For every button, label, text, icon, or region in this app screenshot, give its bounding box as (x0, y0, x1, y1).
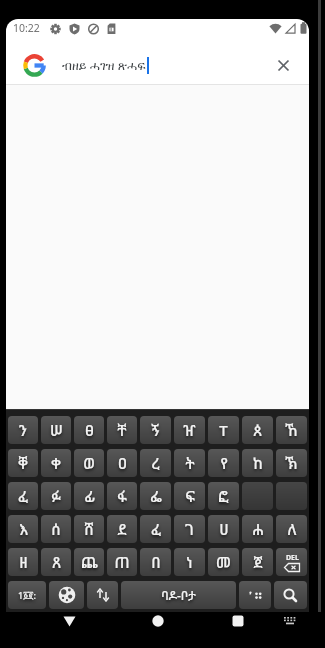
button[interactable]: ባዶ-ቦታ (121, 581, 236, 609)
button[interactable]: እ (8, 515, 38, 543)
button[interactable]: ዠ (174, 416, 205, 444)
staticText: ዐ (118, 453, 127, 473)
button[interactable]: ለ (276, 515, 307, 543)
staticText: ን (19, 420, 27, 440)
button[interactable]: DEL (276, 548, 307, 576)
button[interactable]: ፉ (41, 482, 71, 510)
staticText: ለ (287, 519, 297, 539)
button[interactable] (242, 482, 273, 510)
staticText: ፀ (85, 420, 94, 440)
button[interactable]: T (208, 416, 239, 444)
button[interactable]: ፎ (208, 482, 239, 510)
staticText: ጰ (253, 420, 262, 440)
staticText: ከ (253, 453, 263, 473)
button[interactable]: በ (140, 548, 171, 576)
staticText: እ (19, 519, 28, 539)
button[interactable]: ጰ (242, 416, 273, 444)
button[interactable] (49, 581, 84, 609)
button[interactable]: ፋ (107, 482, 137, 510)
staticText: ነ (186, 552, 193, 572)
button[interactable] (239, 581, 271, 609)
button[interactable] (87, 581, 118, 609)
staticText: ረ (151, 453, 160, 473)
button[interactable] (276, 482, 307, 510)
staticText: ፌ (150, 486, 162, 506)
staticText: 1፩፪: (18, 589, 36, 601)
button[interactable]: የ (208, 449, 239, 477)
button[interactable]: ደ (107, 515, 137, 543)
button[interactable]: ገ (174, 515, 205, 543)
staticText: ፊ (84, 486, 95, 506)
button[interactable]: ፊ (74, 482, 104, 510)
button[interactable] (277, 612, 303, 630)
staticText: ሐ (252, 519, 264, 539)
button[interactable]: ቐ (8, 449, 38, 477)
button[interactable]: ዐ (107, 449, 137, 477)
button[interactable]: ጨ (74, 548, 104, 576)
staticText: DEL (286, 553, 299, 563)
staticText: T (219, 420, 228, 440)
button[interactable]: 1፩፪: (8, 581, 46, 609)
staticText: ዠ (183, 420, 196, 440)
button[interactable]: ዘ (8, 548, 38, 576)
staticText: ደ (117, 519, 127, 539)
staticText: በ (151, 552, 161, 572)
button[interactable]: ፌ (140, 482, 171, 510)
staticText: ጨ (81, 552, 98, 572)
button[interactable]: ሀ (208, 515, 239, 543)
button[interactable]: ብዘይ ሓገዝ ጽሓፍ (23, 46, 295, 84)
staticText: ት (185, 453, 195, 473)
button[interactable]: ኸ (276, 416, 307, 444)
staticText: ቐ (18, 453, 28, 473)
button[interactable]: ረ (140, 449, 171, 477)
button[interactable] (274, 581, 307, 609)
button[interactable]: ሠ (41, 416, 71, 444)
button[interactable] (56, 612, 82, 630)
button[interactable]: መ (208, 548, 239, 576)
button[interactable]: ኽ (276, 449, 307, 477)
button[interactable]: ሸ (74, 515, 104, 543)
staticText: ሰ (51, 519, 61, 539)
staticText: ፈ (151, 519, 161, 539)
button[interactable] (225, 612, 251, 630)
staticText: ጠ (114, 552, 130, 572)
staticText: ሸ (84, 519, 94, 539)
staticText: ፈ (18, 486, 28, 506)
button[interactable]: ን (8, 416, 38, 444)
staticText: የ (220, 453, 228, 473)
staticText: ሠ (50, 420, 63, 440)
staticText: 10:22 (13, 21, 40, 35)
staticText: ፎ (218, 486, 229, 506)
staticText: ቸ (117, 420, 127, 440)
button[interactable]: ፈ (8, 482, 38, 510)
staticText: ፍ (185, 486, 195, 506)
button[interactable]: ኝ (140, 416, 171, 444)
staticText: ኝ (151, 420, 160, 440)
staticText: ባዶ-ቦታ (161, 587, 196, 603)
staticText: ፉ (51, 486, 61, 506)
button[interactable]: ነ (174, 548, 205, 576)
staticText: ዘ (19, 552, 28, 572)
button[interactable] (271, 53, 295, 77)
button[interactable]: ወ (74, 449, 104, 477)
staticText: ጸ (52, 552, 61, 572)
staticText: ሀ (219, 519, 229, 539)
staticText: መ (216, 552, 231, 572)
button[interactable]: ሰ (41, 515, 71, 543)
button[interactable]: ሐ (242, 515, 273, 543)
button[interactable]: ት (174, 449, 205, 477)
button[interactable]: ቸ (107, 416, 137, 444)
button[interactable]: ጀ (242, 548, 273, 576)
button[interactable]: ቀ (41, 449, 71, 477)
staticText: ገ (185, 519, 194, 539)
staticText: ጀ (253, 552, 263, 572)
button[interactable] (145, 612, 171, 630)
button[interactable]: ጠ (107, 548, 137, 576)
button[interactable]: ጸ (41, 548, 71, 576)
button[interactable]: ፀ (74, 416, 104, 444)
staticText: ኽ (285, 453, 298, 473)
button[interactable]: ከ (242, 449, 273, 477)
button[interactable]: ፈ (140, 515, 171, 543)
staticText: ኸ (285, 420, 298, 440)
button[interactable]: ፍ (174, 482, 205, 510)
